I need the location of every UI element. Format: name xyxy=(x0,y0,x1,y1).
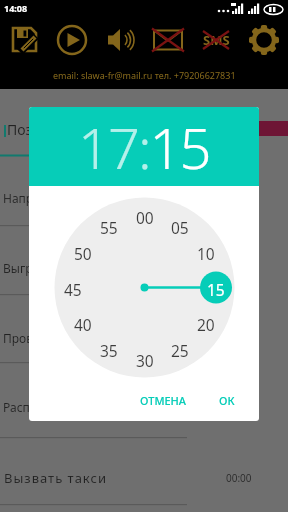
button[interactable]: SMS xyxy=(192,18,240,62)
staticText: ОК xyxy=(219,393,235,408)
staticText: 05 xyxy=(171,217,189,235)
staticText: Вызвать такси xyxy=(4,469,107,487)
staticText: 35 xyxy=(100,340,118,358)
staticText: 15 xyxy=(207,279,225,297)
staticText: 00:00 xyxy=(226,471,252,485)
staticText: 50 xyxy=(74,243,92,261)
staticText: 10 xyxy=(197,243,215,261)
staticText: 45 xyxy=(64,279,82,297)
button[interactable] xyxy=(0,18,48,62)
staticText: 20 xyxy=(197,314,215,332)
staticText: Позв xyxy=(7,120,41,139)
staticText: Расп xyxy=(3,399,30,415)
button[interactable] xyxy=(96,18,144,62)
staticText: Напр xyxy=(3,190,34,206)
staticText: 17:15 xyxy=(78,109,210,185)
button[interactable] xyxy=(240,18,288,62)
button[interactable]: ОК xyxy=(207,385,247,415)
staticText: ОТМЕНА xyxy=(140,393,187,408)
staticText: Выгр xyxy=(3,260,33,276)
staticText: SMS xyxy=(203,31,230,49)
staticText: email: slawa-fr@mail.ru тел. +7920662783… xyxy=(53,69,236,81)
staticText: 25 xyxy=(171,340,189,358)
staticText: 00 xyxy=(136,207,154,225)
staticText: 14:08 xyxy=(4,2,28,14)
button[interactable] xyxy=(48,18,96,62)
staticText: Пров xyxy=(3,330,33,346)
staticText: 55 xyxy=(100,217,118,235)
staticText: 30 xyxy=(136,350,154,368)
staticText: 40 xyxy=(74,314,92,332)
button[interactable] xyxy=(144,18,192,62)
button[interactable]: ОТМЕНА xyxy=(128,385,198,415)
